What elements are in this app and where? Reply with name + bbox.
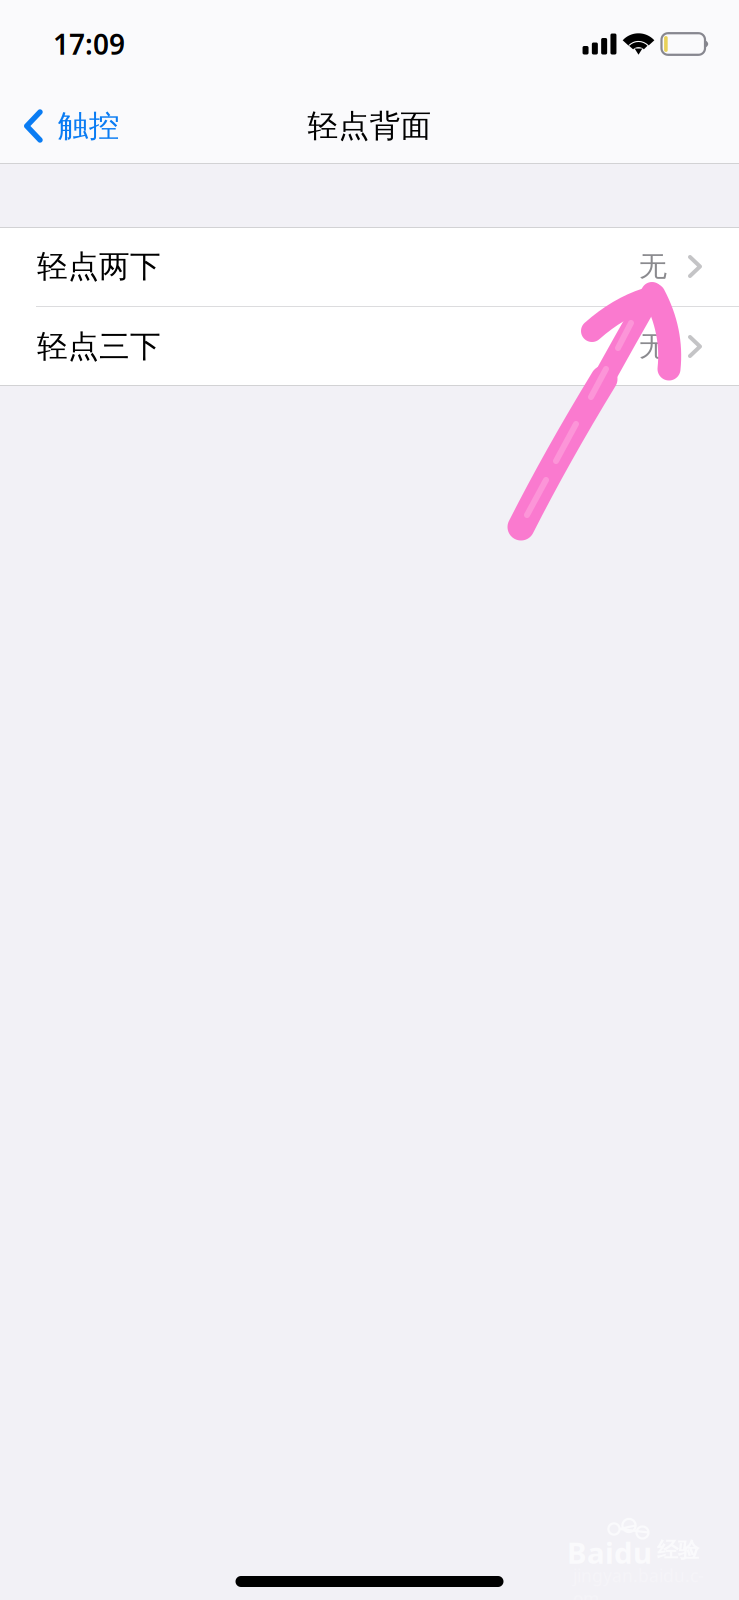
staticText: 触控 bbox=[58, 107, 120, 145]
button[interactable]: 触控 bbox=[0, 88, 134, 164]
staticText: 经验 bbox=[657, 1537, 699, 1563]
staticText: 无 bbox=[639, 329, 667, 364]
staticText: 轻点三下 bbox=[37, 328, 161, 365]
staticText: 轻点背面 bbox=[307, 107, 431, 145]
staticText: 轻点两下 bbox=[37, 248, 161, 285]
staticText: 无 bbox=[639, 249, 667, 284]
staticText: Baidu bbox=[567, 1533, 652, 1572]
button[interactable]: 轻点两下 bbox=[0, 227, 739, 306]
button[interactable]: 轻点三下 bbox=[0, 307, 739, 386]
staticText: 17:09 bbox=[53, 25, 125, 63]
